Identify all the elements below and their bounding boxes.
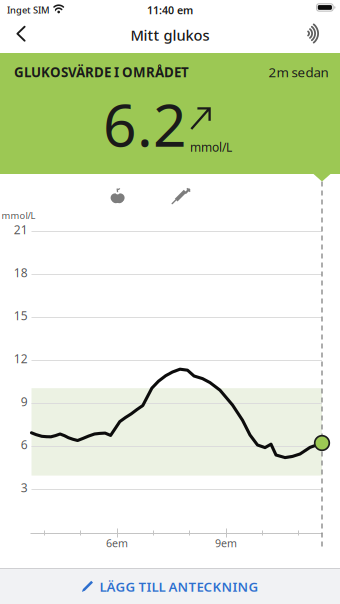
staticText: 6.2 (103, 85, 187, 163)
button[interactable]: Scan sensor (292, 17, 332, 49)
staticText: 15 (14, 307, 28, 323)
staticText: 6em (106, 536, 128, 550)
staticText: LÄGG TILL ANTECKNING (99, 578, 258, 595)
staticText: 2m sedan (268, 63, 328, 81)
staticText: 6 (21, 436, 28, 452)
staticText: 18 (14, 264, 28, 280)
staticText: Mitt glukos (130, 25, 209, 45)
staticText: Inget SIM (7, 4, 50, 16)
staticText: 3 (21, 479, 28, 495)
staticText: 12 (14, 350, 28, 366)
staticText: mmol/L (190, 139, 232, 155)
staticText: 11:40 em (147, 3, 193, 17)
button[interactable]: Back (1, 18, 41, 50)
staticText: mmol/L (1, 209, 35, 222)
staticText: GLUKOSVÄRDE I OMRÅDET (14, 63, 189, 81)
staticText: 9 (21, 393, 28, 409)
staticText: 9em (215, 536, 237, 550)
button[interactable]: LÄGG TILL ANTECKNING (0, 568, 340, 604)
staticText: 21 (14, 221, 28, 237)
